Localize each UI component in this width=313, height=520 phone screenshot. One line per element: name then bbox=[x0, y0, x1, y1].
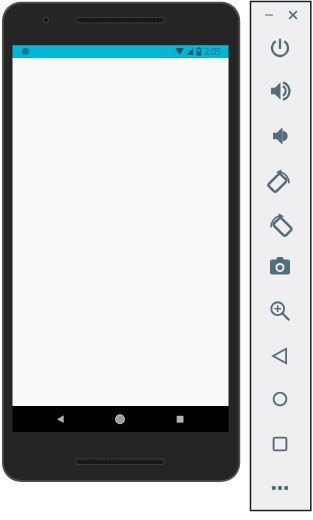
button[interactable]: Volume up bbox=[252, 71, 308, 111]
button[interactable]: Zoom bbox=[252, 291, 308, 331]
button[interactable]: Overview bbox=[252, 424, 308, 464]
button[interactable]: Power bbox=[252, 28, 308, 68]
button[interactable]: More bbox=[252, 468, 308, 508]
button[interactable]: Screenshot bbox=[252, 247, 308, 287]
button[interactable]: Rotate right bbox=[252, 204, 308, 244]
button[interactable]: Minimize bbox=[257, 3, 281, 27]
button[interactable]: Close bbox=[281, 3, 305, 27]
button[interactable]: Volume down bbox=[252, 116, 308, 156]
button[interactable]: Home bbox=[252, 379, 308, 419]
button[interactable]: Back bbox=[252, 336, 308, 376]
button[interactable]: Rotate left bbox=[252, 160, 308, 200]
